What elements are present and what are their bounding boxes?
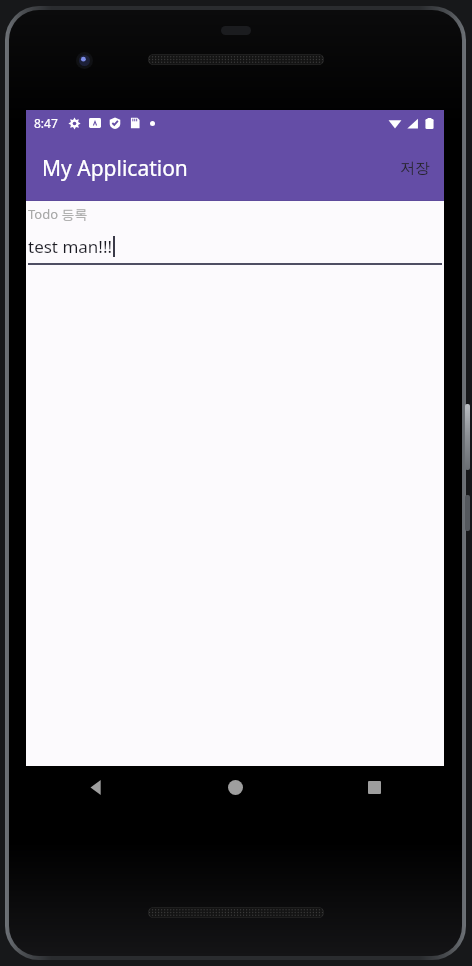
button[interactable]: 저장 [386, 144, 444, 192]
staticText: My Application [42, 154, 188, 183]
staticText: Todo 등록 [28, 205, 88, 223]
button[interactable]: Recent apps [305, 766, 444, 808]
button[interactable]: test man!!! [26, 233, 444, 259]
button[interactable]: Home [166, 766, 305, 808]
staticText: test man!!! [28, 235, 113, 258]
staticText: 8:47 [34, 115, 58, 131]
button[interactable]: Back [26, 766, 166, 808]
staticText: 저장 [400, 159, 430, 178]
